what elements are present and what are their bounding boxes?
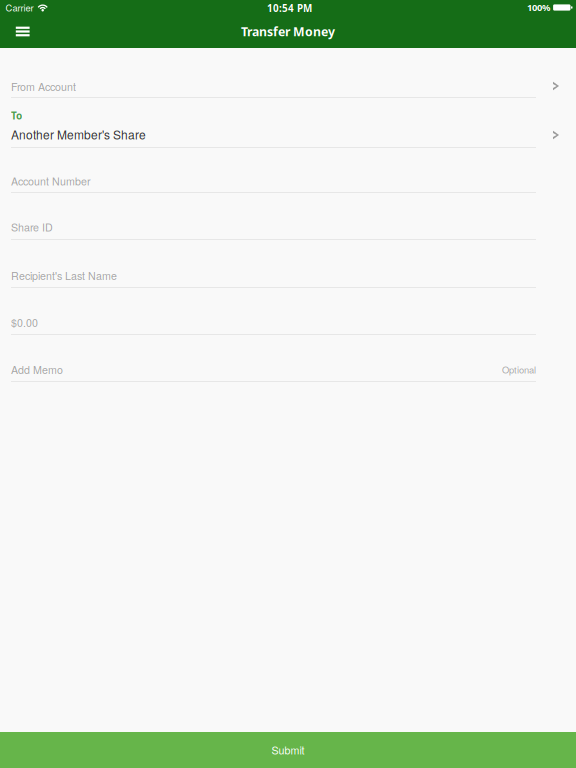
staticText: To	[11, 109, 22, 122]
button[interactable]: To	[0, 98, 576, 148]
staticText: Transfer Money	[241, 23, 335, 40]
button[interactable]: Account Number	[0, 148, 576, 193]
staticText: 100%	[527, 1, 550, 14]
button[interactable]: Share ID	[0, 193, 576, 240]
staticText: Add Memo	[11, 362, 63, 377]
button[interactable]: Submit	[0, 732, 576, 768]
staticText: $0.00	[11, 315, 38, 330]
staticText: 10:54 PM	[267, 1, 312, 15]
button[interactable]: Menu	[8, 20, 38, 43]
staticText: Another Member's Share	[11, 126, 146, 143]
staticText: Account Number	[11, 173, 91, 188]
staticText: Carrier	[5, 1, 33, 14]
staticText: Share ID	[11, 219, 53, 234]
staticText: Submit	[271, 742, 304, 758]
button[interactable]: From Account	[0, 48, 576, 98]
button[interactable]: Recipient's Last Name	[0, 240, 576, 288]
button[interactable]: Add Memo	[0, 335, 576, 382]
staticText: Recipient's Last Name	[11, 268, 117, 283]
staticText: Optional	[502, 363, 536, 376]
staticText: From Account	[11, 79, 76, 94]
button[interactable]: $0.00	[0, 288, 576, 335]
